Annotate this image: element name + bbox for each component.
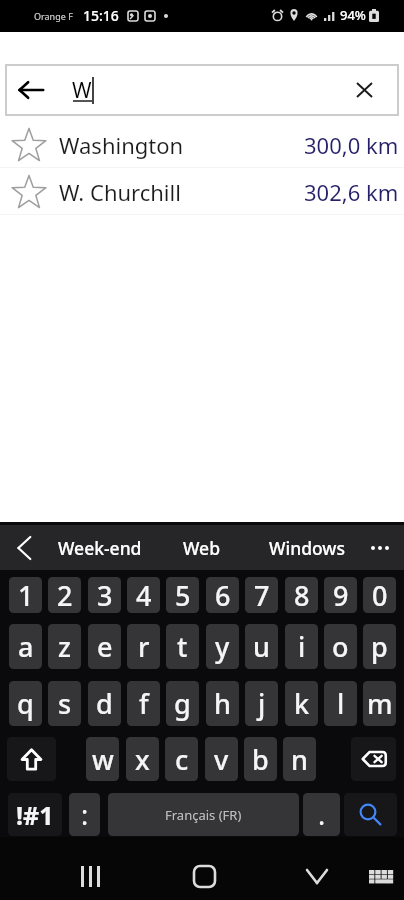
- button[interactable]: u: [245, 624, 278, 669]
- staticText: q: [17, 685, 34, 722]
- staticText: 1: [18, 577, 34, 613]
- button[interactable]: Recents: [60, 846, 120, 900]
- button[interactable]: d: [88, 681, 121, 726]
- staticText: n: [291, 741, 308, 778]
- staticText: f: [139, 685, 149, 722]
- staticText: Week-end: [58, 536, 142, 560]
- staticText: a: [18, 628, 34, 665]
- staticText: s: [58, 685, 72, 722]
- button[interactable]: Change keyboard: [350, 846, 404, 900]
- staticText: p: [371, 628, 388, 665]
- button[interactable]: b: [244, 737, 277, 781]
- staticText: W: [72, 76, 92, 105]
- staticText: 9: [333, 577, 349, 613]
- staticText: e: [97, 628, 113, 665]
- staticText: 94%: [340, 6, 366, 24]
- staticText: .: [318, 796, 326, 833]
- button[interactable]: .: [303, 793, 340, 836]
- staticText: x: [135, 741, 150, 778]
- staticText: Web: [183, 536, 221, 560]
- staticText: 15:16: [83, 6, 119, 25]
- button[interactable]: s: [48, 681, 81, 726]
- button[interactable]: q: [9, 681, 42, 726]
- button[interactable]: W. Churchill: [0, 169, 404, 215]
- button[interactable]: p: [363, 624, 396, 669]
- staticText: W. Churchill: [59, 177, 181, 207]
- staticText: u: [253, 628, 270, 665]
- staticText: :: [81, 796, 89, 833]
- button[interactable]: j: [245, 681, 278, 726]
- button[interactable]: 3: [88, 577, 121, 613]
- button[interactable]: 4: [127, 577, 160, 613]
- staticText: Windows: [269, 536, 345, 560]
- button[interactable]: k: [285, 681, 318, 726]
- staticText: t: [177, 628, 188, 665]
- button[interactable]: 7: [245, 577, 278, 613]
- button[interactable]: f: [127, 681, 160, 726]
- staticText: 7: [254, 577, 270, 613]
- staticText: Washington: [59, 130, 184, 160]
- staticText: m: [367, 685, 393, 722]
- button[interactable]: x: [126, 737, 159, 781]
- button[interactable]: z: [48, 624, 81, 669]
- button[interactable]: w: [86, 737, 119, 781]
- button[interactable]: 0: [363, 577, 396, 613]
- staticText: k: [294, 685, 310, 722]
- button[interactable]: 5: [166, 577, 199, 613]
- button[interactable]: 1: [9, 577, 42, 613]
- button[interactable]: l: [324, 681, 357, 726]
- staticText: 300,0 km: [304, 130, 399, 160]
- button[interactable]: Week-end: [47, 525, 152, 570]
- staticText: 2: [57, 577, 73, 613]
- staticText: v: [214, 741, 229, 778]
- button[interactable]: r: [127, 624, 160, 669]
- button[interactable]: o: [324, 624, 357, 669]
- staticText: Orange F: [34, 10, 73, 22]
- button[interactable]: Home: [174, 846, 234, 900]
- button[interactable]: Previous suggestions: [0, 525, 47, 570]
- button[interactable]: n: [283, 737, 316, 781]
- button[interactable]: Search: [344, 793, 397, 836]
- button[interactable]: Space: [108, 793, 299, 836]
- staticText: 5: [175, 577, 191, 613]
- button[interactable]: Backspace: [351, 737, 396, 781]
- button[interactable]: e: [88, 624, 121, 669]
- button[interactable]: a: [9, 624, 42, 669]
- staticText: Français (FR): [165, 806, 242, 824]
- button[interactable]: t: [166, 624, 199, 669]
- staticText: w: [92, 741, 114, 778]
- staticText: g: [174, 685, 191, 722]
- staticText: !#1: [16, 798, 54, 832]
- staticText: r: [138, 628, 150, 665]
- button[interactable]: y: [206, 624, 239, 669]
- button[interactable]: Washington: [0, 122, 404, 168]
- button[interactable]: m: [363, 681, 396, 726]
- button[interactable]: :: [69, 793, 100, 836]
- staticText: j: [258, 685, 266, 722]
- staticText: 302,6 km: [304, 177, 399, 207]
- button[interactable]: 9: [324, 577, 357, 613]
- staticText: 0: [372, 577, 388, 613]
- staticText: y: [215, 628, 230, 665]
- button[interactable]: Windows: [252, 525, 361, 570]
- button[interactable]: h: [206, 681, 239, 726]
- button[interactable]: Clear: [340, 66, 388, 114]
- staticText: b: [252, 741, 269, 778]
- button[interactable]: !#1: [8, 793, 62, 836]
- button[interactable]: 6: [206, 577, 239, 613]
- button[interactable]: More options: [361, 525, 404, 570]
- button[interactable]: 2: [48, 577, 81, 613]
- button[interactable]: g: [166, 681, 199, 726]
- button[interactable]: v: [205, 737, 238, 781]
- staticText: h: [214, 685, 231, 722]
- button[interactable]: Shift: [7, 737, 56, 781]
- staticText: 3: [97, 577, 113, 613]
- staticText: i: [298, 628, 306, 665]
- button[interactable]: i: [285, 624, 318, 669]
- staticText: l: [337, 685, 345, 722]
- button[interactable]: Hide keyboard: [287, 846, 347, 900]
- button[interactable]: Back: [6, 65, 56, 115]
- button[interactable]: 8: [285, 577, 318, 613]
- button[interactable]: Web: [152, 525, 252, 570]
- button[interactable]: c: [165, 737, 198, 781]
